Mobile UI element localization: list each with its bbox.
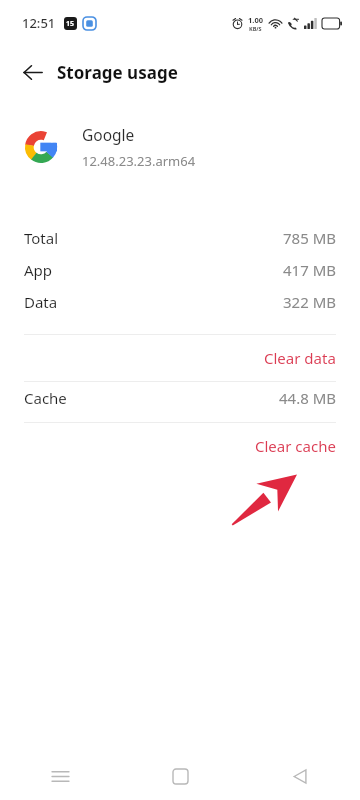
staticText: App [24, 260, 53, 280]
button[interactable]: Total [0, 222, 360, 254]
staticText: 12.48.23.23.arm64 [82, 152, 196, 170]
button[interactable]: Cache [0, 382, 360, 414]
staticText: Total [24, 228, 59, 248]
button[interactable]: Back [12, 52, 52, 92]
staticText: 12:51 [22, 14, 56, 32]
button[interactable]: Back [240, 752, 360, 800]
button[interactable]: Clear cache [0, 423, 360, 469]
button[interactable]: Google [0, 118, 360, 176]
staticText: 1.00 [248, 15, 263, 25]
staticText: Clear cache [255, 436, 336, 456]
button[interactable]: Home [120, 752, 240, 800]
staticText: Data [24, 292, 58, 312]
staticText: 44.8 MB [278, 388, 336, 408]
button[interactable]: App [0, 254, 360, 286]
staticText: KB/S [249, 25, 262, 32]
staticText: 417 MB [283, 260, 336, 280]
staticText: Cache [24, 388, 67, 408]
staticText: Google [82, 124, 135, 145]
staticText: 15 [66, 19, 75, 29]
button[interactable]: Recent apps [0, 752, 120, 800]
button[interactable]: Data [0, 286, 360, 318]
staticText: Clear data [264, 348, 336, 368]
button[interactable]: Clear data [0, 335, 360, 381]
staticText: 785 MB [283, 228, 336, 248]
staticText: 322 MB [283, 292, 336, 312]
staticText: Storage usage [57, 61, 178, 84]
